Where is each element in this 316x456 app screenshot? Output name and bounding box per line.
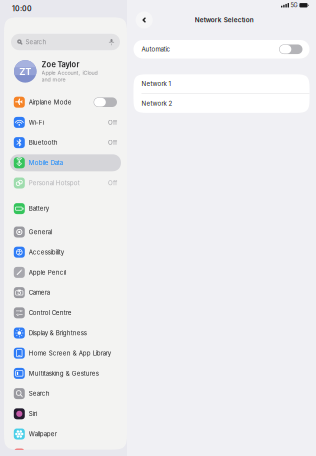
button[interactable]: Home Screen & App Library <box>10 343 121 363</box>
button[interactable]: Back <box>136 11 153 28</box>
staticText: ZT <box>19 66 31 77</box>
staticText: Wallpaper <box>29 430 57 438</box>
staticText: Search <box>26 38 47 46</box>
staticText: Display & Brightness <box>29 329 87 337</box>
button[interactable]: General <box>10 222 121 242</box>
staticText: Home Screen & App Library <box>29 349 111 357</box>
staticText: Mobile Data <box>29 159 63 166</box>
staticText: Multitasking & Gestures <box>29 370 99 377</box>
staticText: 10:00 <box>12 4 32 13</box>
staticText: and more <box>41 76 65 83</box>
button[interactable]: Airplane Mode <box>10 92 121 112</box>
staticText: Network 2 <box>141 100 172 107</box>
staticText: Bluetooth <box>29 139 58 146</box>
button[interactable]: Mobile Data <box>10 153 121 173</box>
staticText: Accessibility <box>29 248 64 256</box>
staticText: Off <box>108 179 117 187</box>
staticText: Wi-Fi <box>29 119 44 126</box>
staticText: Automatic <box>141 45 170 53</box>
button[interactable]: Wi-Fi <box>10 112 121 132</box>
button[interactable]: Multitasking & Gestures <box>10 363 121 383</box>
button[interactable]: Camera <box>10 282 121 303</box>
button[interactable]: Search <box>10 383 121 404</box>
button[interactable]: Control Centre <box>10 303 121 323</box>
button[interactable]: Personal Hotspot <box>10 173 121 193</box>
staticText: 5G <box>291 2 298 9</box>
staticText: General <box>29 228 52 236</box>
button[interactable]: Apple Pencil <box>10 262 121 282</box>
staticText: Network Selection <box>195 16 254 24</box>
button[interactable]: Automatic <box>133 40 309 58</box>
button[interactable]: Notifications <box>10 444 121 456</box>
staticText: Apple Pencil <box>29 269 66 276</box>
button[interactable]: Bluetooth <box>10 132 121 153</box>
staticText: Personal Hotspot <box>29 179 80 187</box>
staticText: Off <box>108 139 117 146</box>
button[interactable]: Battery <box>10 198 121 219</box>
staticText: Off <box>108 119 117 126</box>
staticText: Search <box>29 390 50 397</box>
staticText: Network 1 <box>141 80 170 87</box>
staticText: Airplane Mode <box>29 98 72 106</box>
button[interactable]: Wallpaper <box>10 424 121 444</box>
staticText: Zoe Taylor <box>41 60 79 69</box>
button[interactable]: ZT <box>8 57 123 85</box>
button[interactable]: Network 2 <box>133 94 309 113</box>
staticText: Siri <box>29 410 37 417</box>
button[interactable]: Accessibility <box>10 242 121 262</box>
button[interactable]: Network 1 <box>133 74 309 93</box>
button[interactable]: Display & Brightness <box>10 323 121 343</box>
button[interactable]: Siri <box>10 404 121 424</box>
staticText: Apple Account, iCloud <box>41 69 97 76</box>
staticText: Control Centre <box>29 309 72 316</box>
staticText: Battery <box>29 205 49 212</box>
staticText: Camera <box>29 289 50 296</box>
